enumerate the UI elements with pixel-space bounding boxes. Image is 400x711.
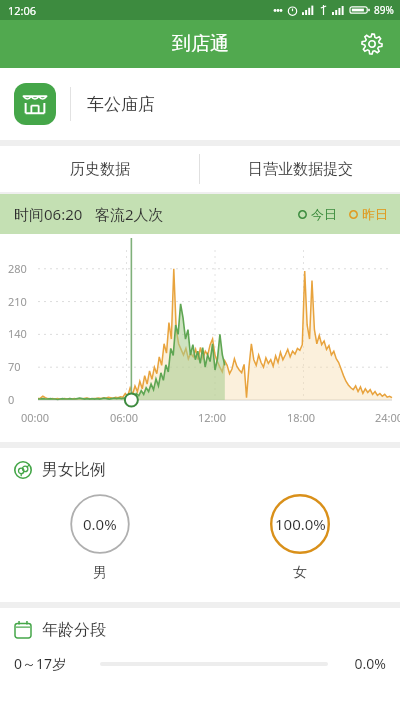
staticText: 12:00 xyxy=(198,410,227,425)
staticText: 12:06 xyxy=(8,3,37,18)
staticText: 0.0% xyxy=(83,514,117,534)
button[interactable]: 0.0% xyxy=(0,480,200,602)
staticText: 70 xyxy=(8,359,21,374)
staticText: 时间06:20 xyxy=(14,204,83,224)
staticText: 昨日 xyxy=(362,206,388,222)
button[interactable]: 100.0% xyxy=(200,480,400,602)
staticText: 女 xyxy=(293,564,307,582)
staticText: 男女比例 xyxy=(42,460,106,480)
staticText: 100.0% xyxy=(275,514,326,534)
staticText: 0 xyxy=(8,392,15,407)
button[interactable]: 日营业数据提交 xyxy=(200,146,400,192)
button[interactable]: 0～17岁 xyxy=(14,654,386,673)
button[interactable]: 历史数据 xyxy=(0,146,199,192)
staticText: 日营业数据提交 xyxy=(248,160,353,179)
staticText: 到店通 xyxy=(172,32,229,56)
staticText: 140 xyxy=(8,326,27,341)
staticText: 00:00 xyxy=(21,410,50,425)
staticText: 年龄分段 xyxy=(42,620,106,640)
staticText: 0.0% xyxy=(340,654,386,673)
staticText: 车公庙店 xyxy=(87,94,155,115)
button[interactable]: 车公庙店 xyxy=(0,68,400,140)
staticText: 男 xyxy=(93,564,107,582)
staticText: 280 xyxy=(8,261,27,276)
button[interactable]: Settings xyxy=(354,26,390,62)
staticText: 客流2人次 xyxy=(95,204,164,224)
staticText: 历史数据 xyxy=(70,160,130,179)
staticText: 89% xyxy=(374,3,394,17)
staticText: 24:00 xyxy=(375,410,400,425)
staticText: 今日 xyxy=(311,206,337,222)
staticText: 06:00 xyxy=(110,410,139,425)
staticText: 0～17岁 xyxy=(14,654,100,673)
staticText: 210 xyxy=(8,294,27,309)
staticText: 18:00 xyxy=(287,410,316,425)
